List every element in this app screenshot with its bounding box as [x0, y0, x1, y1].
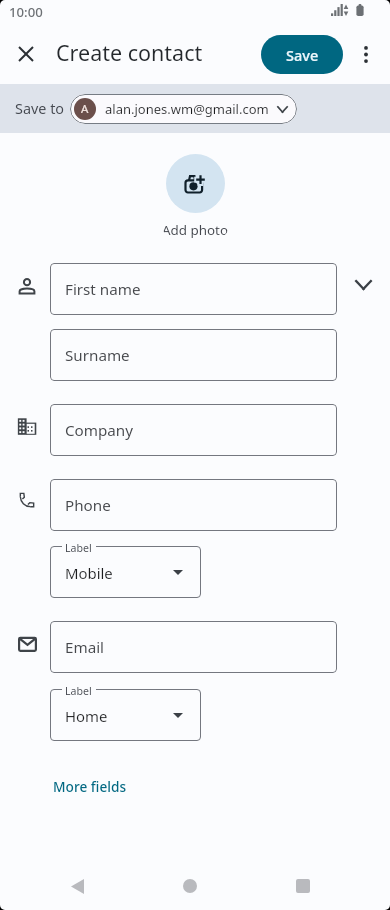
- staticText: Save: [286, 45, 319, 65]
- button[interactable]: Add photo: [162, 154, 229, 239]
- button[interactable]: Save: [261, 35, 343, 74]
- staticText: Email: [65, 637, 105, 658]
- button[interactable]: A: [70, 94, 297, 124]
- staticText: Surname: [65, 345, 130, 366]
- staticText: Create contact: [56, 38, 203, 67]
- button[interactable]: Home: [167, 863, 213, 909]
- button[interactable]: Recents: [280, 863, 326, 909]
- button[interactable]: Phone: [50, 479, 337, 531]
- button[interactable]: Close: [6, 34, 46, 74]
- button[interactable]: First name: [50, 263, 337, 315]
- staticText: A: [81, 101, 89, 117]
- staticText: More fields: [53, 777, 127, 796]
- button[interactable]: Surname: [50, 329, 337, 381]
- staticText: Mobile: [65, 563, 113, 583]
- button[interactable]: Label: [50, 689, 201, 741]
- button[interactable]: Email: [50, 621, 337, 673]
- button[interactable]: More options: [346, 34, 386, 74]
- button[interactable]: More fields: [47, 772, 133, 801]
- staticText: Save to: [15, 99, 65, 119]
- button[interactable]: Label: [50, 546, 201, 598]
- staticText: Company: [65, 420, 133, 441]
- staticText: Add photo: [162, 221, 229, 239]
- button[interactable]: Expand name fields: [343, 265, 383, 305]
- button[interactable]: Company: [50, 404, 337, 456]
- button[interactable]: Back: [54, 863, 100, 909]
- staticText: Phone: [65, 495, 111, 516]
- staticText: Label: [65, 684, 92, 698]
- staticText: 10:00: [9, 3, 43, 21]
- staticText: First name: [65, 279, 141, 300]
- staticText: Label: [65, 541, 92, 555]
- staticText: alan.jones.wm@gmail.com: [105, 100, 269, 118]
- staticText: Home: [65, 706, 108, 726]
